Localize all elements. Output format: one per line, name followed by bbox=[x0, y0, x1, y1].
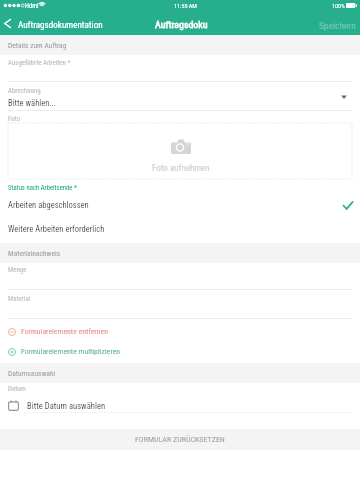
staticText: Bitte wählen... bbox=[8, 98, 57, 108]
button[interactable] bbox=[0, 324, 360, 340]
staticText: Menge bbox=[8, 266, 27, 274]
staticText: Foto bbox=[8, 115, 21, 123]
staticText: Datum bbox=[8, 385, 26, 393]
button[interactable] bbox=[0, 263, 360, 289]
staticText: Foto aufnehmen bbox=[152, 163, 210, 174]
button[interactable]: Speichern bbox=[314, 15, 360, 35]
staticText: Materialnachweis bbox=[8, 249, 61, 258]
staticText: Ausgeführte Arbeiten * bbox=[8, 59, 71, 67]
staticText: Auftragsdoku bbox=[155, 19, 208, 31]
button[interactable] bbox=[0, 396, 360, 413]
staticText: Formularelemente multiplizieren bbox=[21, 347, 121, 356]
staticText: Auftragsdokumentation bbox=[18, 20, 103, 31]
staticText: 11:55 AM bbox=[174, 2, 197, 9]
staticText: Hdmi bbox=[25, 2, 39, 10]
button[interactable] bbox=[0, 195, 360, 216]
staticText: Status nach Arbeitsende * bbox=[8, 184, 77, 192]
button[interactable] bbox=[0, 219, 360, 240]
staticText: Arbeiten abgeschlossen bbox=[8, 200, 89, 210]
button[interactable] bbox=[0, 82, 360, 110]
staticText: 100% bbox=[332, 2, 345, 9]
button[interactable]: FORMULAR ZURÜCKSETZEN bbox=[0, 429, 360, 450]
staticText: Formularelemente entfernen bbox=[21, 327, 108, 336]
button[interactable] bbox=[8, 123, 352, 179]
other: Auswahl öffnen bbox=[341, 95, 347, 99]
staticText: Speichern bbox=[319, 20, 356, 31]
staticText: Bitte Datum auswählen bbox=[27, 401, 106, 411]
button[interactable]: Auftragsdokumentation bbox=[0, 15, 110, 35]
staticText: Details zum Auftrag bbox=[8, 41, 67, 50]
staticText: Abrechnung bbox=[8, 87, 41, 95]
button[interactable] bbox=[0, 344, 360, 360]
button[interactable] bbox=[0, 290, 360, 317]
button[interactable] bbox=[0, 55, 360, 81]
other: Ausgewählt bbox=[343, 201, 353, 210]
staticText: Material bbox=[8, 295, 31, 303]
staticText: Datumsauswahl bbox=[8, 369, 56, 378]
staticText: Weitere Arbeiten erforderlich bbox=[8, 224, 105, 234]
staticText: FORMULAR ZURÜCKSETZEN bbox=[135, 435, 225, 444]
